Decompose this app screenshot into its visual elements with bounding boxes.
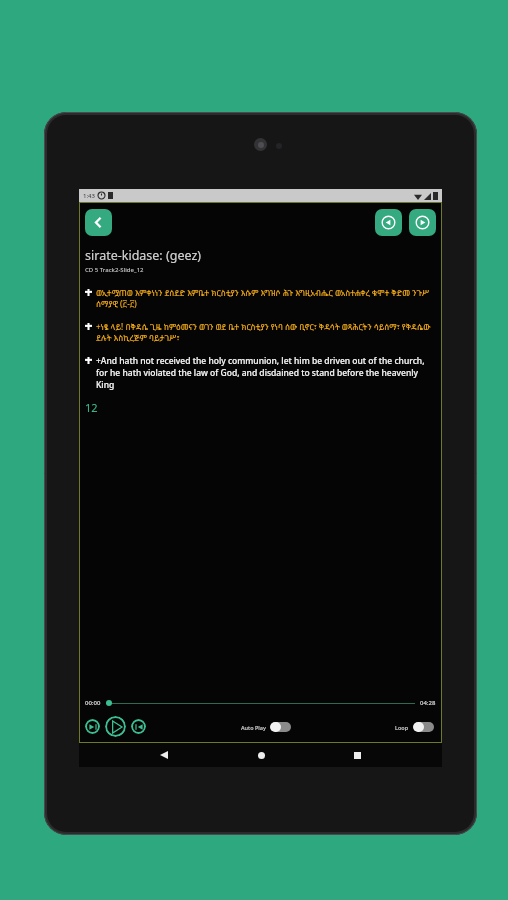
staticText: 1:43 <box>83 192 95 200</box>
button[interactable]: Rewind <box>85 719 100 734</box>
staticText: 00:00 <box>85 699 101 707</box>
staticText: 04:28 <box>420 699 436 707</box>
staticText: +ነፄ ላይ! በቅዳሴ ጊዜ ከምዕመናን ወገን ወደ ቤተ ክርስቲያን … <box>96 321 436 344</box>
staticText: 12 <box>85 400 98 415</box>
staticText: +And hath not received the holy communio… <box>96 355 436 391</box>
button[interactable]: Recents <box>345 743 369 767</box>
staticText: sirate-kidase: (geez) <box>85 247 202 264</box>
button[interactable]: Next <box>409 209 436 236</box>
button[interactable]: Back <box>85 209 112 236</box>
button[interactable]: Loop <box>395 722 434 732</box>
staticText: ወኢተሟጠወ እምቀነነን ደሰደድ እምቤተ ክርስቲያን እሱም እግዝሶ … <box>96 287 436 310</box>
button[interactable]: Home <box>249 743 273 767</box>
staticText: Auto Play <box>241 724 266 731</box>
staticText: CD 5 Track2-Slide_12 <box>85 266 144 274</box>
button[interactable]: Previous <box>375 209 402 236</box>
button[interactable]: Play <box>105 716 126 737</box>
button[interactable]: Back <box>152 743 176 767</box>
button[interactable]: Auto Play <box>241 722 291 732</box>
staticText: Loop <box>395 724 409 731</box>
button[interactable]: Forward <box>131 719 146 734</box>
